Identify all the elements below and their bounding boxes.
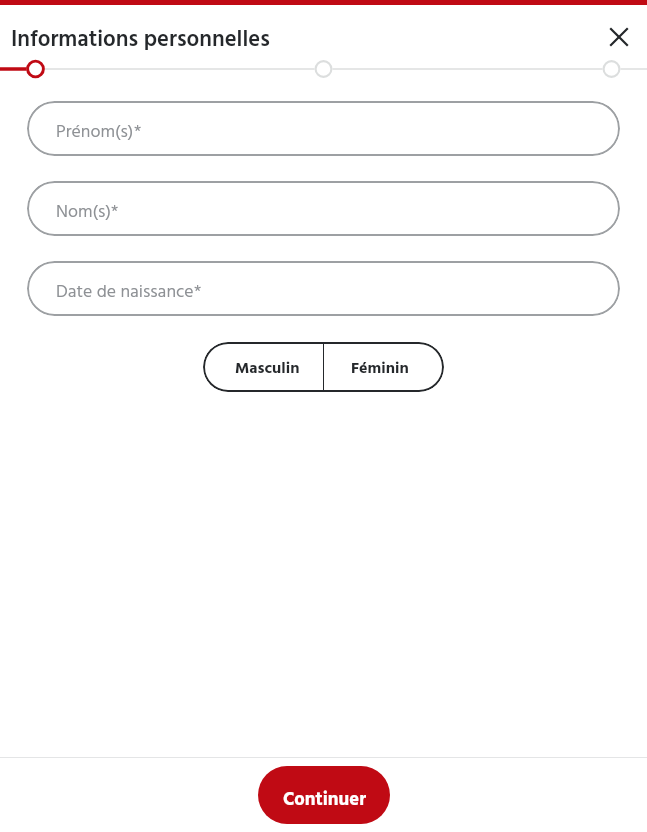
staticText: Informations personnelles xyxy=(11,22,270,58)
button[interactable]: Continuer xyxy=(258,766,390,824)
button[interactable]: Fermer xyxy=(597,15,641,59)
staticText: Féminin xyxy=(351,356,409,382)
button[interactable]: Féminin xyxy=(324,342,444,392)
staticText: Nom(s) xyxy=(56,198,111,226)
staticText: * xyxy=(134,118,142,146)
staticText: Masculin xyxy=(235,356,300,382)
staticText: * xyxy=(111,198,119,226)
button[interactable]: Prénom(s) xyxy=(27,101,620,156)
staticText: Prénom(s) xyxy=(56,118,134,146)
button[interactable]: Masculin xyxy=(203,342,323,392)
staticText: * xyxy=(194,278,202,306)
staticText: Continuer xyxy=(283,785,366,815)
button[interactable]: Date de naissance xyxy=(27,261,620,316)
button[interactable]: Nom(s) xyxy=(27,181,620,236)
staticText: Date de naissance xyxy=(56,278,194,306)
